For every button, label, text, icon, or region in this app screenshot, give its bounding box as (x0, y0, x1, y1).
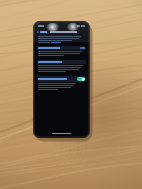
button[interactable]: Toggle setting (37, 76, 86, 82)
button[interactable]: Back (35, 29, 88, 35)
button[interactable] (37, 46, 86, 50)
other: Back (37, 31, 39, 33)
button[interactable] (37, 60, 86, 64)
button[interactable]: Toggle setting (77, 77, 85, 81)
